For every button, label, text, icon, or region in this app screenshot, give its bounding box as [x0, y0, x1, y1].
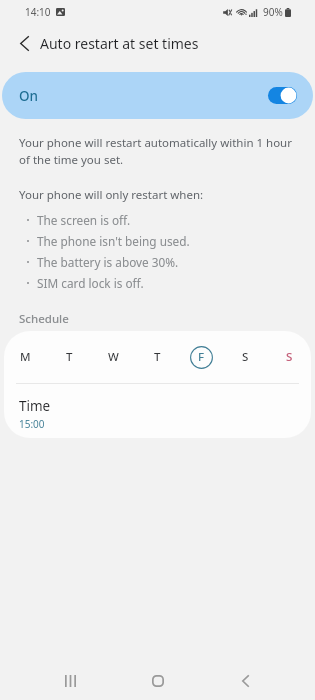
staticText: 14:10: [25, 5, 51, 19]
staticText: F: [198, 349, 205, 365]
staticText: T: [66, 349, 73, 365]
button[interactable]: Recents: [44, 662, 96, 700]
button[interactable]: W: [91, 331, 135, 383]
staticText: Schedule: [19, 311, 69, 327]
button[interactable]: M: [4, 331, 47, 383]
staticText: The screen is off.: [37, 212, 131, 228]
button[interactable]: T: [47, 331, 91, 383]
staticText: The battery is above 30%.: [37, 254, 179, 270]
button[interactable]: Time: [4, 384, 311, 438]
button[interactable]: T: [135, 331, 179, 383]
button[interactable]: On: [2, 72, 313, 119]
staticText: M: [20, 349, 31, 365]
staticText: On: [19, 87, 39, 105]
button[interactable]: S: [267, 331, 311, 383]
staticText: 90%: [263, 5, 283, 19]
button[interactable]: S: [223, 331, 267, 383]
button[interactable]: Back: [219, 662, 271, 700]
button[interactable]: F: [179, 331, 223, 383]
staticText: T: [154, 349, 161, 365]
button[interactable]: Home: [132, 662, 184, 700]
staticText: SIM card lock is off.: [37, 275, 144, 291]
staticText: S: [286, 349, 293, 365]
staticText: S: [242, 349, 249, 365]
button[interactable]: Back: [0, 24, 40, 62]
staticText: W: [108, 349, 119, 365]
staticText: Your phone will restart automatically wi…: [19, 135, 305, 168]
staticText: Time: [19, 397, 51, 415]
staticText: Your phone will only restart when:: [19, 187, 204, 203]
staticText: 15:00: [19, 417, 45, 431]
staticText: The phone isn't being used.: [37, 233, 190, 249]
staticText: Auto restart at set times: [40, 34, 199, 53]
